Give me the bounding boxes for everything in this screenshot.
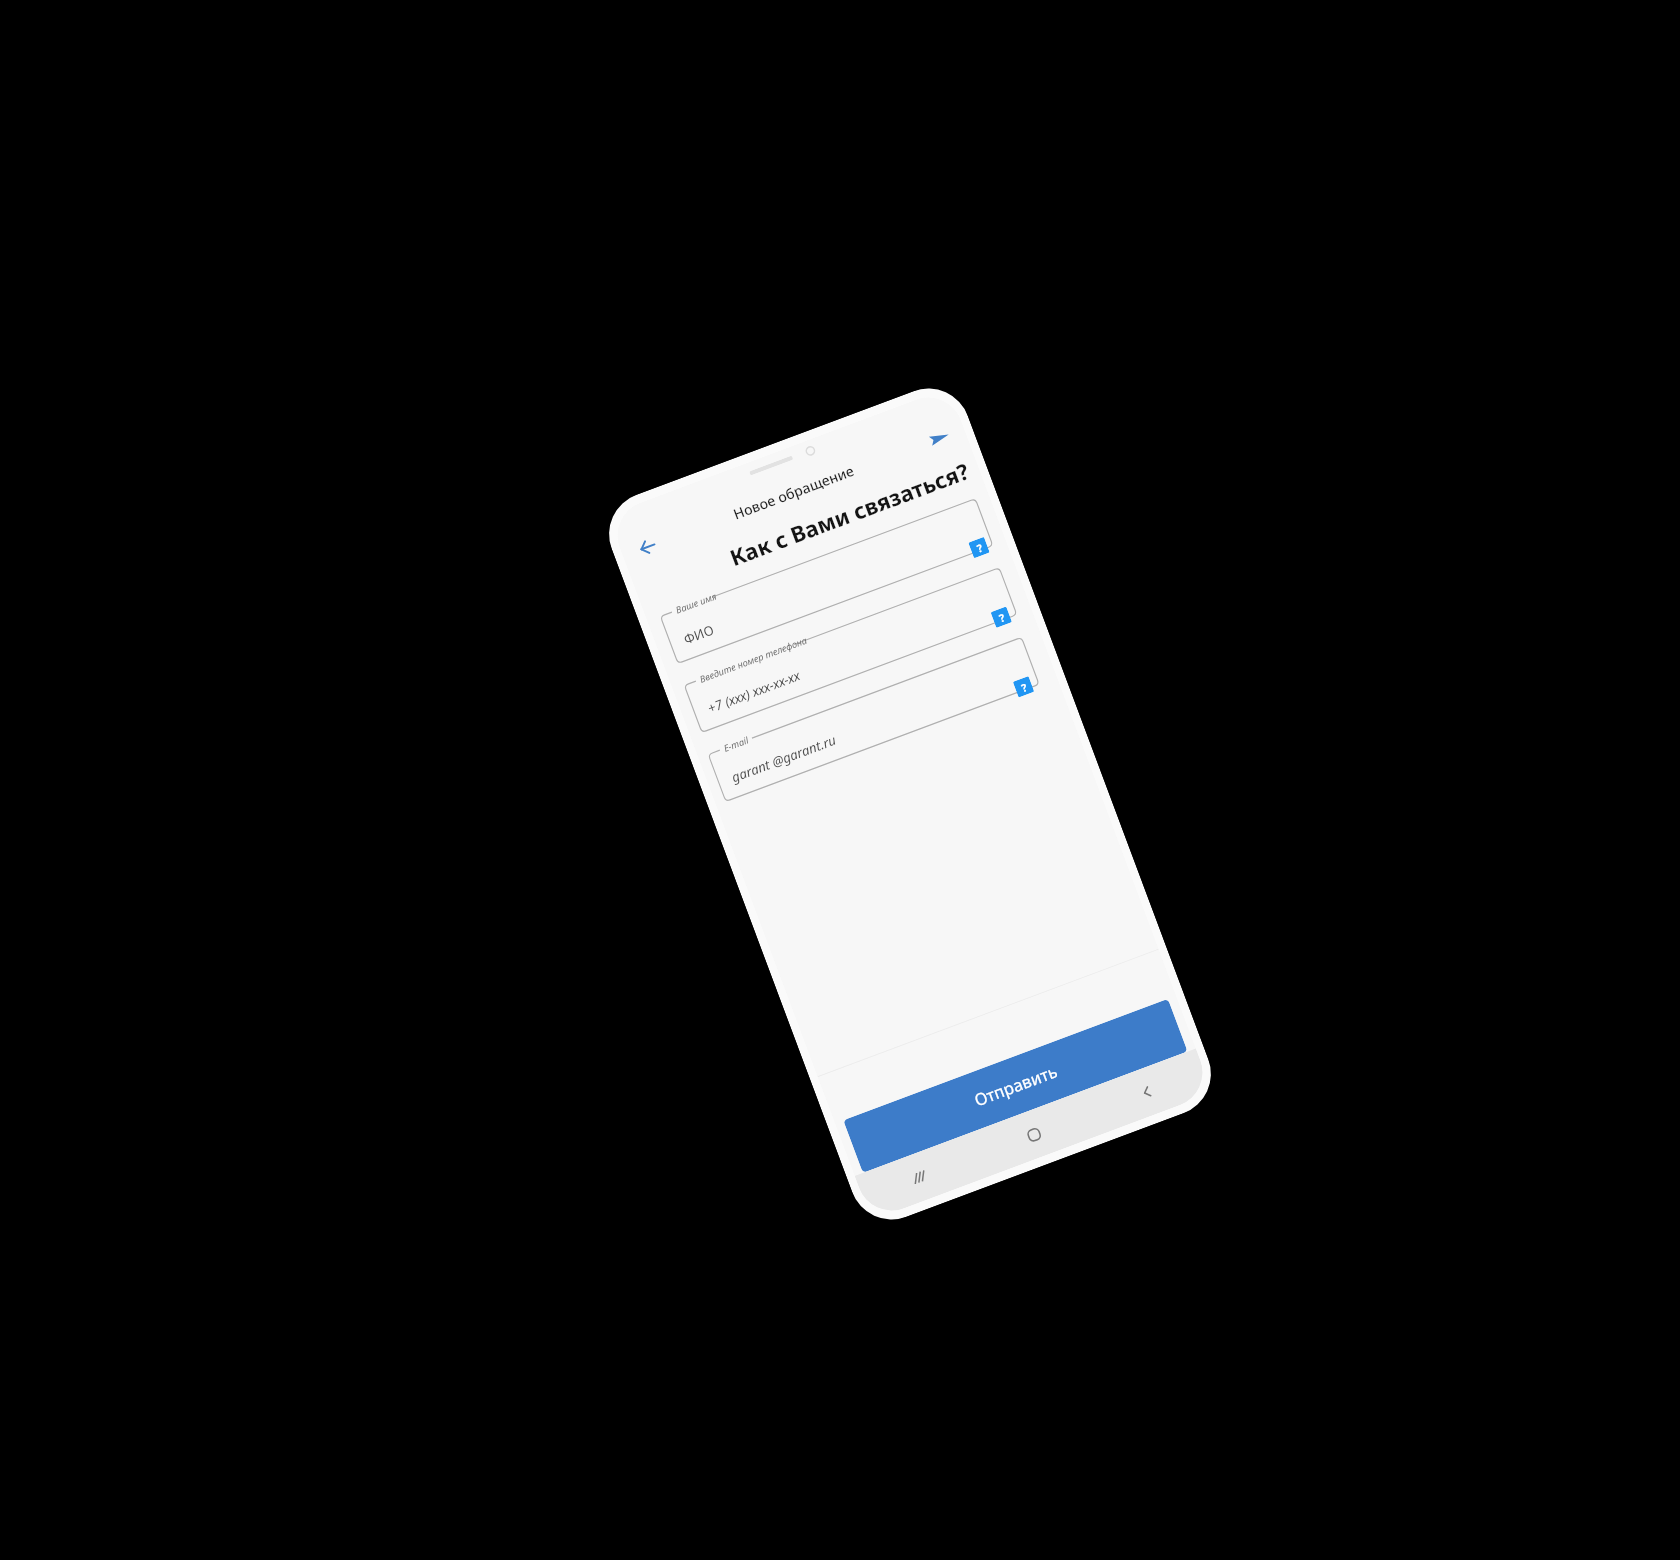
staticText: ? xyxy=(1019,680,1029,695)
staticText: Как с Вами связаться? xyxy=(725,455,973,572)
button[interactable]: Недавние xyxy=(855,1133,985,1220)
staticText: Новое обращение xyxy=(661,435,926,550)
button[interactable]: Отправить xyxy=(843,999,1188,1173)
staticText: Отправить xyxy=(971,1060,1061,1112)
button[interactable]: Ваше имя xyxy=(658,493,993,663)
staticText: ФИО xyxy=(681,620,717,648)
staticText: Ваше имя xyxy=(674,590,719,616)
button[interactable]: E-mail xyxy=(706,632,1039,801)
button[interactable]: Введите номер телефона xyxy=(682,562,1017,732)
button[interactable]: Справка xyxy=(1013,676,1034,698)
staticText: +7 (ххх) ххх-хх-хх xyxy=(705,666,803,717)
button[interactable]: Назад xyxy=(1082,1048,1212,1135)
staticText: ? xyxy=(975,540,984,555)
staticText: ? xyxy=(997,610,1007,625)
button[interactable]: Домой xyxy=(968,1091,1099,1178)
button[interactable]: Назад xyxy=(625,524,670,570)
staticText: garant @garant.ru xyxy=(729,730,839,786)
button[interactable]: Справка xyxy=(968,537,990,558)
button[interactable]: Справка xyxy=(990,606,1012,628)
staticText: E-mail xyxy=(722,734,751,754)
staticText: Введите номер телефона xyxy=(698,634,809,685)
button[interactable]: Отправить xyxy=(917,415,962,460)
